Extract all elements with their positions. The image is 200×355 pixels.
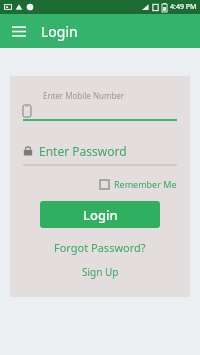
button[interactable]: Login [40, 201, 160, 228]
button[interactable]: Remember Me [100, 178, 177, 190]
staticText: Enter Password [39, 143, 127, 159]
staticText: Sign Up [82, 265, 119, 279]
button[interactable]: Forgot Password? [48, 238, 152, 257]
staticText: Login [41, 22, 78, 41]
button[interactable]: Open navigation menu [7, 19, 31, 43]
staticText: Login [83, 206, 118, 224]
button[interactable]: Sign Up [76, 263, 125, 281]
staticText: 4:49 PM [170, 2, 197, 12]
staticText: Forgot Password? [54, 240, 146, 255]
staticText: Enter Mobile Number [43, 90, 125, 101]
staticText: Remember Me [114, 178, 177, 190]
